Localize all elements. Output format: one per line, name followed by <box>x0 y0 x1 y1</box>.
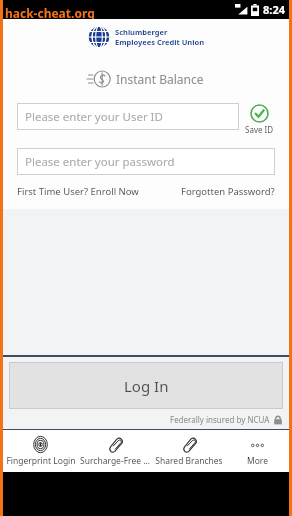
staticText: Surcharge-Free A... <box>78 455 152 467</box>
staticText: 8:24 <box>263 2 285 17</box>
staticText: First Time User? Enroll Now <box>17 185 139 198</box>
staticText: Log In <box>124 376 169 396</box>
staticText: Please enter your password <box>25 154 175 170</box>
staticText: More <box>247 455 268 467</box>
button[interactable]: First Time User? Enroll Now <box>17 185 139 198</box>
button[interactable]: Surcharge-Free A... <box>78 434 152 469</box>
staticText: Federally insured by NCUA <box>170 414 270 425</box>
button[interactable]: Please enter your User ID <box>17 103 239 130</box>
button[interactable]: Shared Branches <box>152 434 226 469</box>
button[interactable]: Log In <box>9 362 283 409</box>
button[interactable]: Instant Balance <box>83 66 210 92</box>
staticText: hack-cheat.org <box>5 5 95 21</box>
staticText: Instant Balance <box>116 71 204 87</box>
button[interactable]: More <box>226 434 289 469</box>
button[interactable]: Save ID <box>245 103 274 135</box>
staticText: Schlumberger <box>115 27 168 37</box>
staticText: Forgotten Password? <box>181 185 275 198</box>
staticText: Shared Branches <box>155 455 223 467</box>
button[interactable]: Forgotten Password? <box>181 185 275 198</box>
staticText: Save ID <box>245 124 274 135</box>
staticText: Fingerprint Login <box>6 455 76 467</box>
button[interactable]: Please enter your password <box>17 148 275 175</box>
button[interactable]: Fingerprint Login <box>3 434 78 469</box>
staticText: Employees Credit Union <box>115 37 205 47</box>
staticText: Please enter your User ID <box>25 109 163 125</box>
